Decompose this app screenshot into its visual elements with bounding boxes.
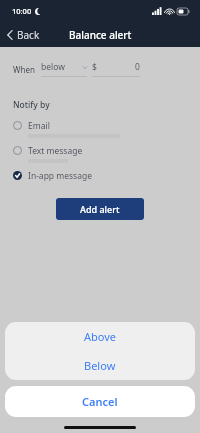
staticText: When <box>13 64 35 75</box>
button[interactable]: In-app message <box>13 170 187 182</box>
staticText: Below <box>84 358 116 373</box>
staticText: Balance alert <box>69 28 132 42</box>
button[interactable]: Below <box>5 351 195 380</box>
button[interactable]: Email <box>13 120 187 138</box>
button[interactable]: Text message <box>13 145 187 163</box>
button[interactable]: $ <box>92 61 140 77</box>
staticText: below <box>41 61 65 73</box>
button[interactable]: Above <box>5 322 195 351</box>
button[interactable]: below <box>41 61 87 77</box>
staticText: Back <box>17 28 40 42</box>
staticText: $ <box>92 61 97 73</box>
staticText: Above <box>84 329 117 344</box>
staticText: 10:00 <box>12 6 32 16</box>
staticText: Cancel <box>82 394 118 409</box>
staticText: Text message <box>28 145 83 157</box>
staticText: 0 <box>135 61 140 73</box>
staticText: Add alert <box>80 203 120 215</box>
staticText: Notify by <box>13 99 50 111</box>
button[interactable]: Back <box>0 24 48 46</box>
staticText: In-app message <box>28 170 92 182</box>
staticText: Email <box>28 120 50 132</box>
button[interactable]: Cancel <box>5 386 195 417</box>
button[interactable]: Add alert <box>56 198 144 220</box>
